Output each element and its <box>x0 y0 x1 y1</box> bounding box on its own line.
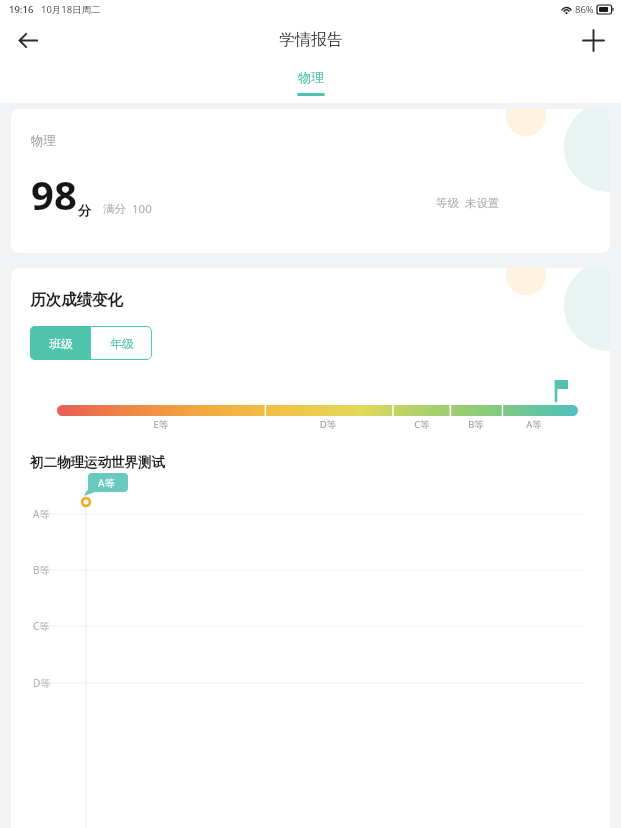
staticText: 分 <box>78 202 91 218</box>
staticText: 满分 100 <box>103 201 152 217</box>
staticText: D等 <box>33 676 51 690</box>
staticText: 班级 <box>49 336 73 351</box>
staticText: 学情报告 <box>279 30 343 50</box>
staticText: B等 <box>33 563 50 577</box>
staticText: 10月18日周二 <box>41 3 101 16</box>
staticText: 物理 <box>298 69 324 85</box>
staticText: C等 <box>410 418 434 431</box>
button[interactable]: 班级 <box>30 326 91 360</box>
button[interactable]: 物理 <box>281 62 341 103</box>
staticText: B等 <box>464 418 488 431</box>
staticText: C等 <box>33 619 50 633</box>
button[interactable]: 返回 <box>7 19 49 61</box>
staticText: 86% <box>575 3 594 16</box>
staticText: 98 <box>31 167 77 221</box>
staticText: E等 <box>149 418 173 431</box>
staticText: D等 <box>316 418 340 431</box>
staticText: 未设置 <box>465 196 500 210</box>
button[interactable]: 添加 <box>572 19 614 61</box>
button[interactable]: 年级 <box>91 326 152 360</box>
staticText: 等级 <box>436 196 459 210</box>
staticText: 物理 <box>31 133 56 149</box>
staticText: 19:16 <box>9 3 34 16</box>
staticText: A等 <box>98 476 115 490</box>
staticText: 历次成绩变化 <box>30 290 123 310</box>
staticText: A等 <box>33 507 50 521</box>
staticText: 初二物理运动世界测试 <box>30 454 165 471</box>
button[interactable]: 物理 <box>11 109 610 253</box>
staticText: A等 <box>522 418 546 431</box>
staticText: 年级 <box>110 336 134 351</box>
